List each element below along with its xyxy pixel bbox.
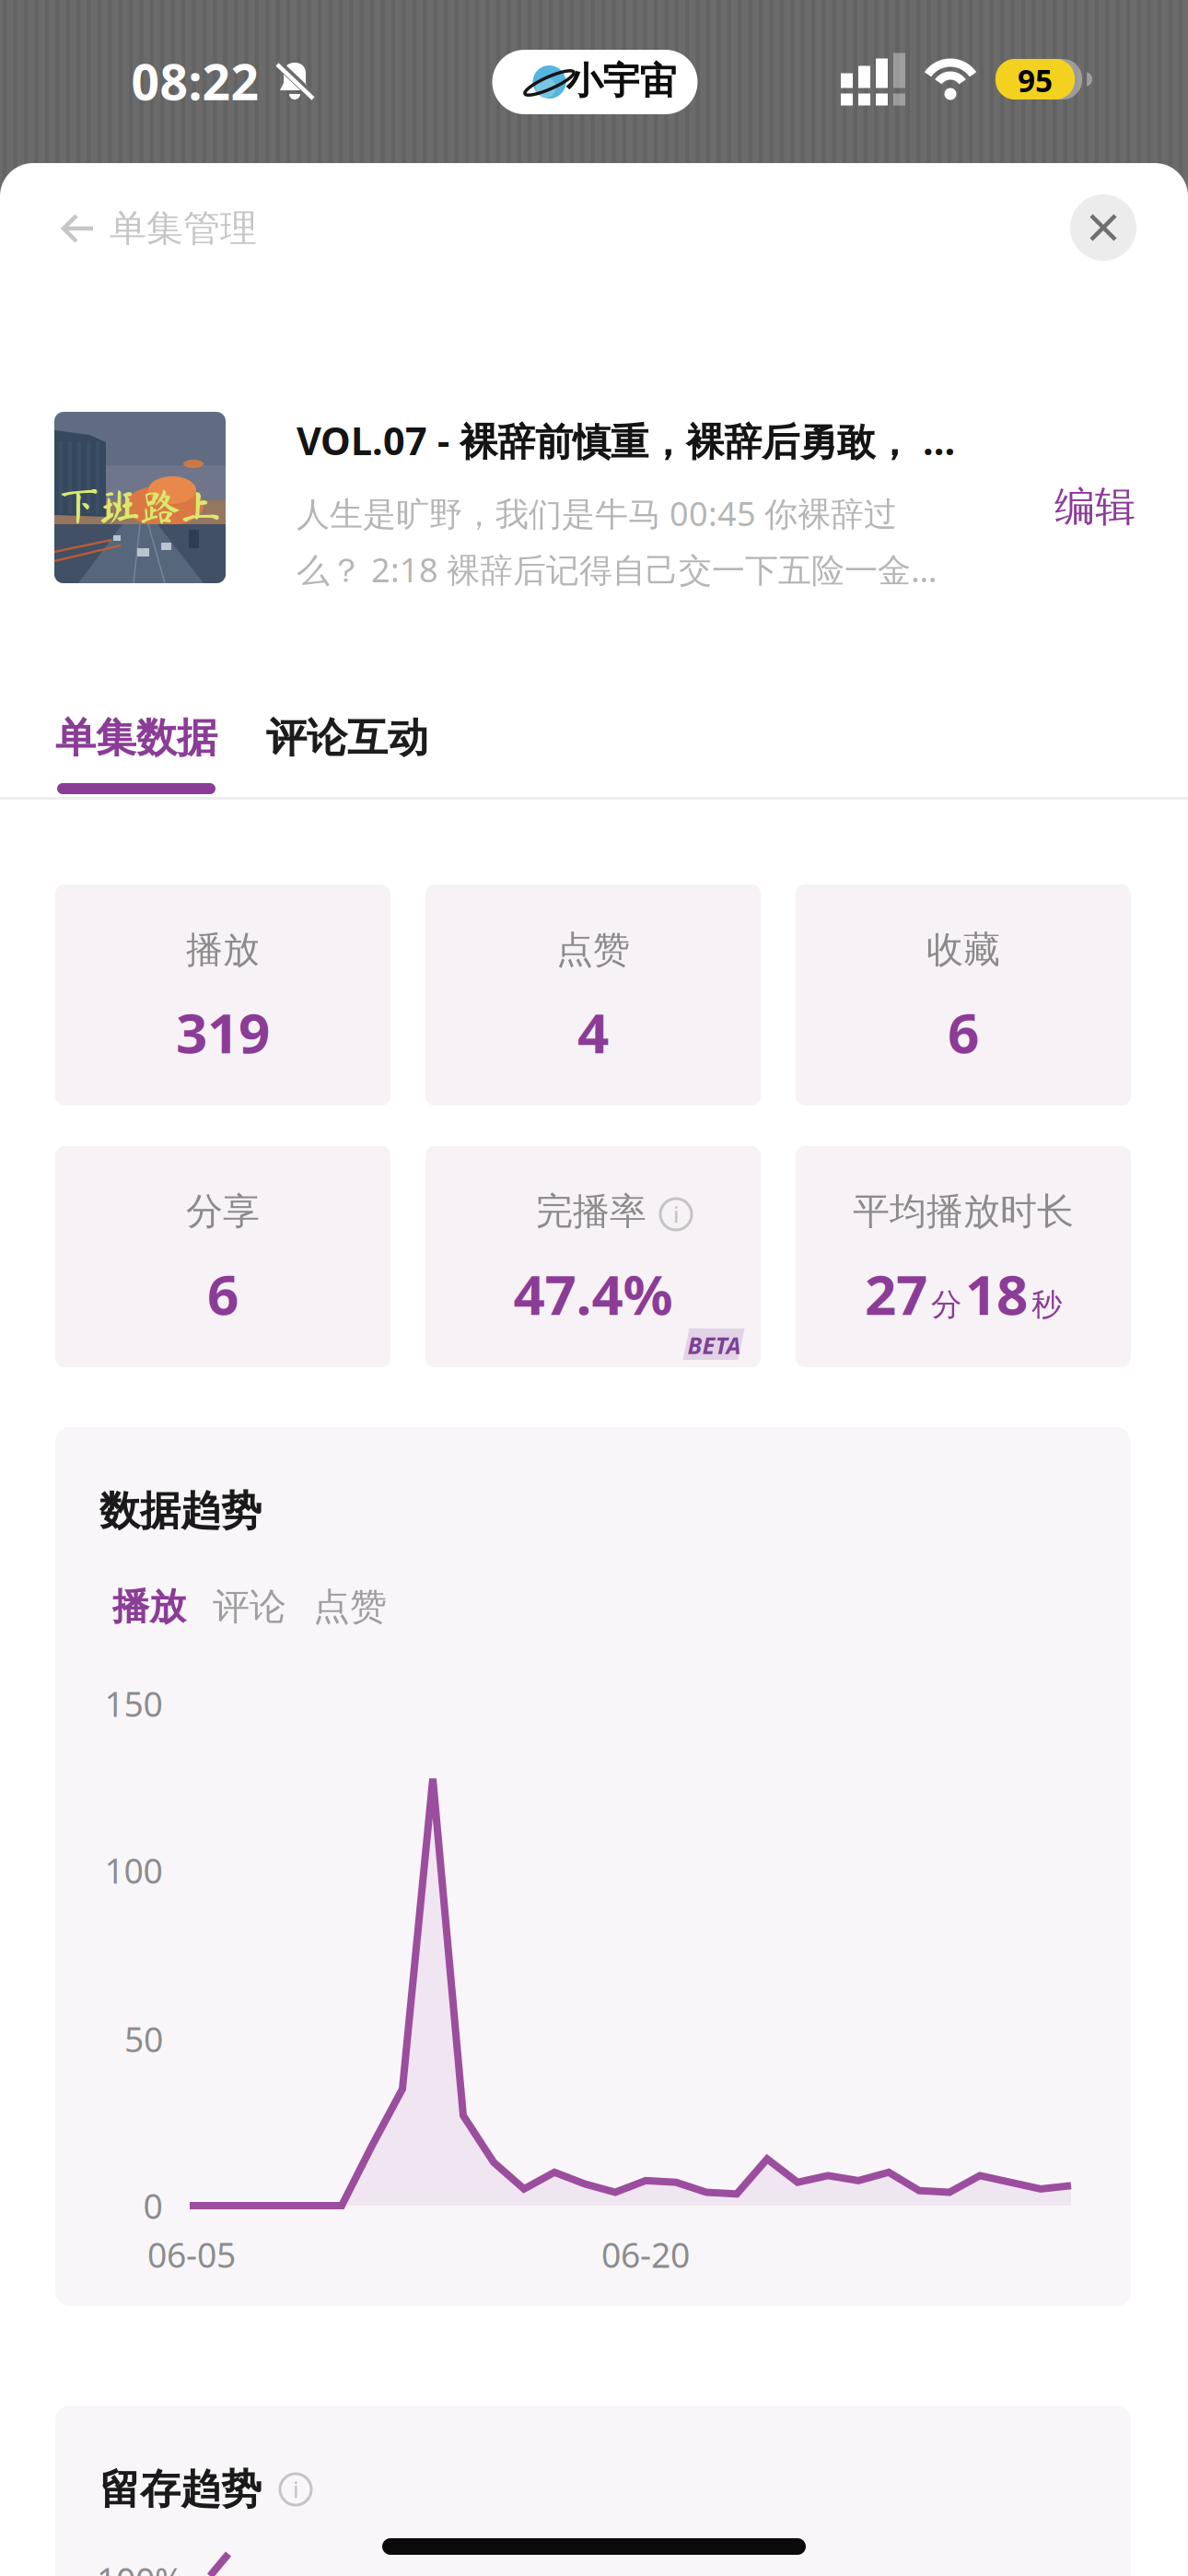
staticText: 秒 — [1031, 1286, 1062, 1324]
staticText: 编辑 — [1054, 482, 1136, 532]
staticText: 点赞 — [313, 1584, 387, 1629]
staticText: 下班路上 — [59, 486, 221, 526]
staticText: i — [293, 2475, 298, 2504]
staticText: 评论互动 — [266, 713, 428, 763]
staticText: 收藏 — [926, 927, 1000, 972]
button[interactable]: 编辑 — [1054, 482, 1136, 532]
button[interactable]: 评论 — [213, 1584, 286, 1629]
button[interactable]: 评论互动 — [266, 713, 428, 763]
staticText: 4 — [577, 995, 609, 1069]
staticText: 么？ 2:18 裸辞后记得自己交一下五险一金… — [297, 547, 937, 591]
button[interactable]: 单集数据 — [55, 713, 217, 763]
staticText: 47.4% — [513, 1257, 673, 1330]
staticText: 分享 — [186, 1189, 260, 1234]
staticText: 08:22 — [131, 48, 259, 114]
button[interactable]: 完播率说明 — [660, 1199, 692, 1230]
staticText: 数据趋势 — [99, 1486, 262, 1536]
button[interactable]: 关闭 — [1070, 194, 1136, 261]
staticText: 播放 — [186, 927, 260, 972]
staticText: 评论 — [213, 1584, 286, 1629]
staticText: 06-20 — [601, 2232, 690, 2277]
staticText: 319 — [176, 995, 270, 1069]
staticText: BETA — [687, 1330, 741, 1361]
staticText: 50 — [124, 2016, 163, 2062]
staticText: 平均播放时长 — [853, 1189, 1074, 1234]
staticText: 27 — [865, 1257, 927, 1330]
staticText: 0 — [143, 2183, 163, 2228]
staticText: 150 — [105, 1681, 163, 1726]
staticText: 18 — [965, 1257, 1028, 1330]
staticText: 100% — [97, 2557, 183, 2576]
staticText: 单集数据 — [55, 713, 217, 763]
button[interactable]: 留存趋势说明 — [280, 2474, 311, 2505]
staticText: 分 — [931, 1286, 961, 1324]
staticText: 人生是旷野，我们是牛马 00:45 你裸辞过 — [297, 491, 897, 535]
staticText: i — [673, 1200, 679, 1229]
staticText: 100 — [105, 1847, 163, 1893]
staticText: 单集管理 — [110, 206, 257, 251]
staticText: 留存趋势 — [99, 2465, 262, 2514]
staticText: 95 — [1018, 60, 1053, 101]
staticText: 06-05 — [147, 2232, 236, 2277]
staticText: 小宇宙 — [566, 58, 676, 104]
staticText: 点赞 — [556, 927, 630, 972]
staticText: 完播率 — [536, 1189, 646, 1234]
staticText: VOL.07 - 裸辞前慎重，裸辞后勇敢， … — [297, 415, 955, 466]
staticText: 6 — [948, 995, 979, 1069]
button[interactable]: 返回 单集管理 — [60, 206, 257, 251]
button[interactable]: 点赞 — [313, 1584, 387, 1629]
button[interactable]: 播放 — [112, 1584, 186, 1629]
staticText: 播放 — [112, 1584, 186, 1629]
staticText: 6 — [207, 1257, 239, 1330]
